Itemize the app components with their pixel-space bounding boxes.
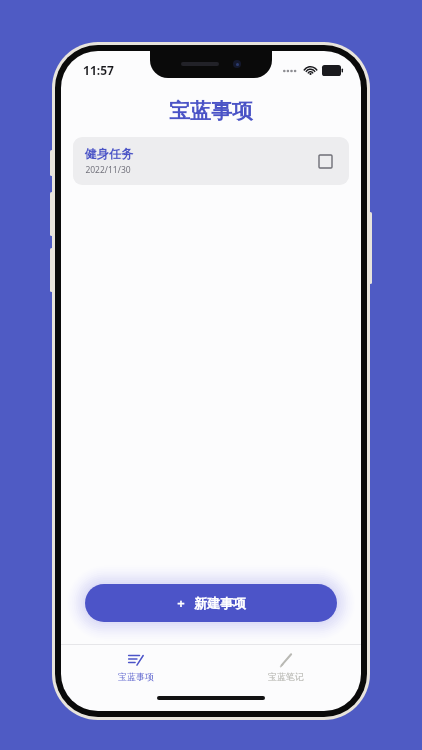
- staticText: 11:57: [83, 62, 114, 78]
- button[interactable]: +: [85, 584, 337, 622]
- staticText: 宝蓝事项: [169, 98, 253, 124]
- staticText: 宝蓝事项: [118, 671, 154, 682]
- button[interactable]: 健身任务: [73, 137, 349, 185]
- staticText: +: [177, 594, 185, 612]
- staticText: 宝蓝笔记: [268, 671, 304, 682]
- button[interactable]: Mark task complete: [315, 151, 335, 171]
- button[interactable]: 宝蓝事项: [61, 645, 211, 689]
- staticText: 健身任务: [85, 146, 133, 161]
- staticText: 新建事项: [194, 595, 246, 611]
- staticText: 2022/11/30: [85, 164, 131, 176]
- button[interactable]: 宝蓝笔记: [211, 645, 361, 689]
